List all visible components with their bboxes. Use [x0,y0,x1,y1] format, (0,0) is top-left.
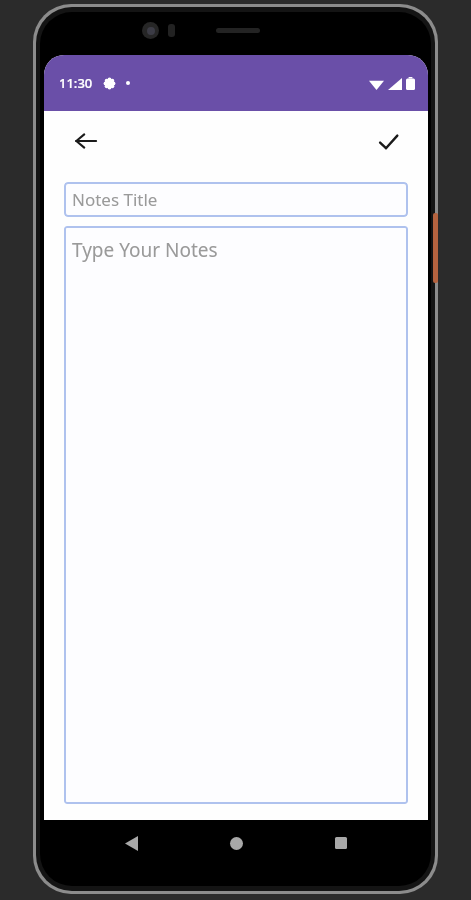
staticText: 11:30 [59,74,93,92]
staticText: Notes Title [72,188,158,211]
staticText: Type Your Notes [72,237,218,263]
button[interactable]: Save [368,121,408,161]
button[interactable]: Back [66,121,106,161]
button[interactable]: Home [218,825,254,861]
button[interactable]: Recent apps [323,825,359,861]
button[interactable]: Notes Title [64,182,408,217]
button[interactable]: Back [113,825,149,861]
button[interactable]: Type Your Notes [64,226,408,804]
